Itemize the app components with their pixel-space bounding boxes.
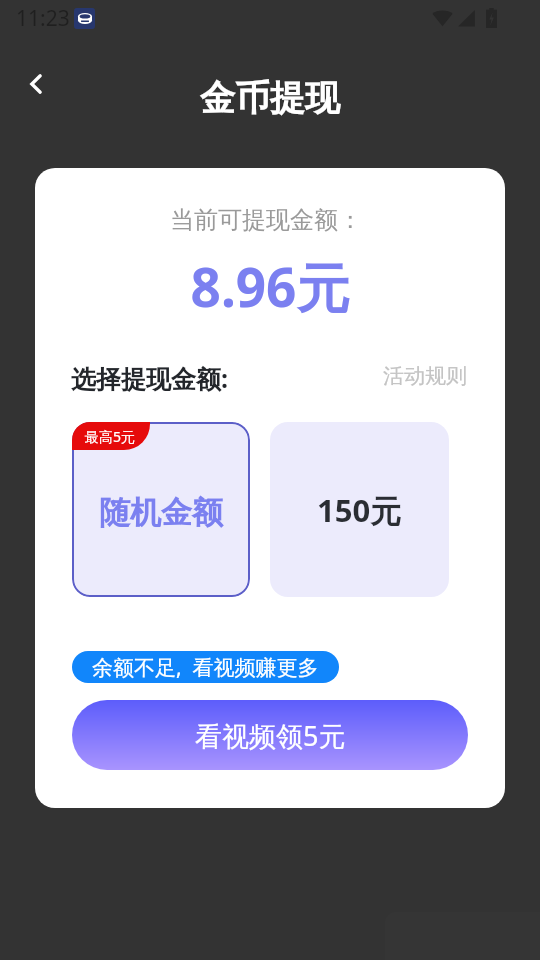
staticText: 活动规则 xyxy=(383,363,467,389)
staticText: 当前可提现金额： xyxy=(35,205,501,235)
button[interactable]: 随机金额 xyxy=(72,422,250,597)
staticText: 最高5元 xyxy=(85,427,136,446)
staticText: 随机金额 xyxy=(99,493,223,532)
staticText: 8.96元 xyxy=(35,250,505,322)
staticText: 金币提现 xyxy=(0,76,540,120)
staticText: 11:23 xyxy=(16,4,70,33)
staticText: 余额不足, 看视频赚更多 xyxy=(92,653,319,682)
staticText: 看视频领5元 xyxy=(195,717,346,754)
button[interactable]: 150元 xyxy=(270,422,449,597)
button[interactable]: 活动规则 xyxy=(383,363,467,389)
button[interactable]: 余额不足, 看视频赚更多 xyxy=(72,651,339,683)
button[interactable]: 看视频领5元 xyxy=(72,700,468,770)
button[interactable]: Back xyxy=(14,62,58,106)
staticText: 选择提现金额: xyxy=(71,361,229,395)
staticText: 150元 xyxy=(317,489,402,531)
